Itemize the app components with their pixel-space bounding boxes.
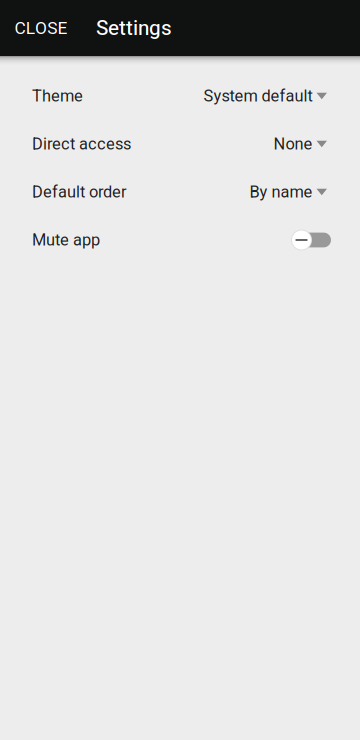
button[interactable]: Default order xyxy=(0,168,360,216)
staticText: Direct access xyxy=(32,134,131,154)
button[interactable]: Mute app xyxy=(0,216,360,264)
button[interactable]: Settings xyxy=(70,0,172,56)
button[interactable]: Theme xyxy=(0,72,360,120)
staticText: Theme xyxy=(32,86,83,106)
staticText: Settings xyxy=(96,16,172,40)
staticText: By name xyxy=(249,182,312,202)
staticText: None xyxy=(273,134,312,154)
button[interactable]: Direct access xyxy=(0,120,360,168)
button[interactable]: CLOSE xyxy=(0,0,70,56)
staticText: CLOSE xyxy=(15,18,67,38)
staticText: Mute app xyxy=(32,230,100,250)
staticText: Default order xyxy=(32,182,127,202)
staticText: System default xyxy=(203,86,312,106)
